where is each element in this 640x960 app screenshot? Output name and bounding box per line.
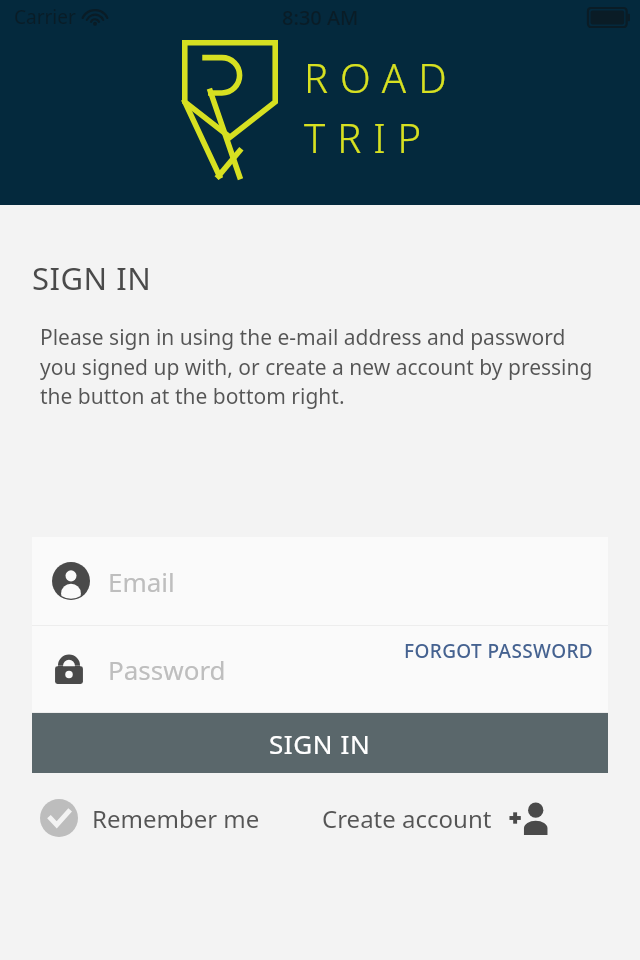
other: Create account: [508, 801, 550, 835]
staticText: Carrier: [14, 4, 76, 30]
button[interactable]: Remember me: [38, 791, 262, 845]
staticText: Create account: [322, 802, 492, 835]
other: Email field: [52, 562, 90, 600]
staticText: Please sign in using the e-mail address …: [40, 323, 596, 410]
staticText: Email: [108, 564, 175, 599]
button[interactable]: Password field: [32, 626, 608, 712]
staticText: FORGOT PASSWORD: [404, 638, 594, 664]
staticText: Password: [108, 652, 226, 687]
button[interactable]: Create account: [320, 793, 552, 843]
staticText: Remember me: [92, 802, 260, 835]
button[interactable]: FORGOT PASSWORD: [394, 626, 608, 672]
other: Password field: [52, 652, 86, 686]
button[interactable]: Email field: [32, 537, 608, 625]
staticText: 8:30 AM: [282, 4, 359, 31]
staticText: SIGN IN: [269, 726, 371, 761]
staticText: TRIP: [304, 110, 434, 164]
staticText: SIGN IN: [32, 257, 152, 299]
button[interactable]: SIGN IN: [32, 713, 608, 773]
staticText: ROAD: [304, 50, 459, 104]
